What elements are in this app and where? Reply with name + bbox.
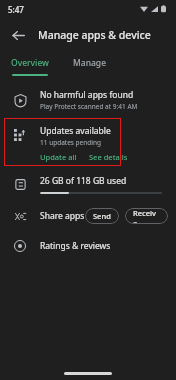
staticText: 11 updates pending: [40, 138, 101, 147]
button[interactable]: Manage: [60, 52, 120, 74]
staticText: Play Protect scanned at 9:41 AM: [40, 102, 138, 111]
staticText: See details: [89, 152, 128, 162]
staticText: Ratings & reviews: [40, 240, 111, 252]
button[interactable]: Ratings & reviews: [0, 231, 176, 261]
staticText: No harmful apps found: [40, 89, 134, 101]
button[interactable]: See details: [89, 152, 128, 162]
button[interactable]: Updates available: [0, 117, 176, 167]
staticText: Share apps: [40, 210, 85, 222]
staticText: Manage apps & device: [38, 28, 151, 42]
button[interactable]: Update all: [40, 152, 77, 162]
staticText: 5:47: [8, 4, 24, 15]
staticText: Updates available: [40, 125, 111, 137]
staticText: Manage: [73, 57, 107, 69]
staticText: Send: [93, 211, 111, 221]
button[interactable]: Receive: [125, 208, 168, 224]
staticText: Overview: [11, 57, 49, 69]
button[interactable]: Overview: [0, 52, 60, 74]
button[interactable]: Send: [85, 208, 119, 224]
staticText: Receive: [133, 208, 160, 224]
button[interactable]: No harmful apps found: [0, 83, 176, 117]
staticText: 26 GB of 118 GB used: [40, 175, 127, 187]
staticText: Update all: [40, 152, 77, 162]
button[interactable]: 26 GB of 118 GB used: [0, 167, 176, 201]
button[interactable]: Back: [4, 21, 32, 49]
